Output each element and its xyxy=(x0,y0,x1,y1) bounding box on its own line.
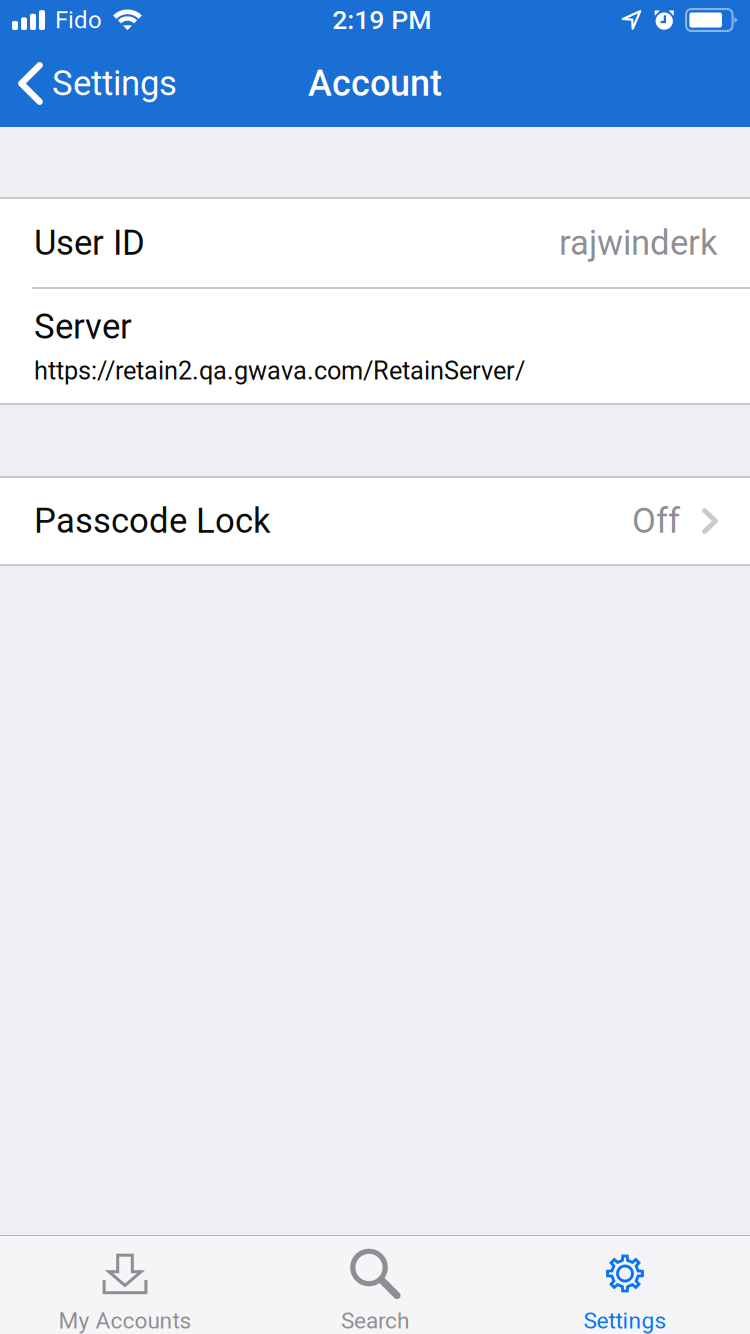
button[interactable]: Search xyxy=(250,1236,500,1334)
button[interactable]: Settings xyxy=(0,40,191,127)
staticText: Settings xyxy=(52,63,177,104)
staticText: rajwinderk xyxy=(559,223,718,263)
staticText: Off xyxy=(632,501,680,541)
staticText: https://retain2.qa.gwava.com/RetainServe… xyxy=(34,356,525,386)
staticText: User ID xyxy=(34,223,145,263)
staticText: My Accounts xyxy=(58,1307,191,1334)
button[interactable]: User ID xyxy=(0,199,750,287)
staticText: Search xyxy=(341,1307,409,1334)
staticText: Passcode Lock xyxy=(34,501,271,541)
staticText: 2:19 PM xyxy=(332,4,431,36)
button[interactable]: Server xyxy=(0,289,750,403)
staticText: Account xyxy=(308,62,442,105)
button[interactable]: Settings xyxy=(500,1236,750,1334)
button[interactable]: My Accounts xyxy=(0,1236,250,1334)
staticText: Settings xyxy=(583,1307,666,1334)
staticText: Fido xyxy=(55,6,102,34)
button[interactable]: Passcode Lock xyxy=(0,478,750,564)
staticText: Server xyxy=(34,306,132,347)
